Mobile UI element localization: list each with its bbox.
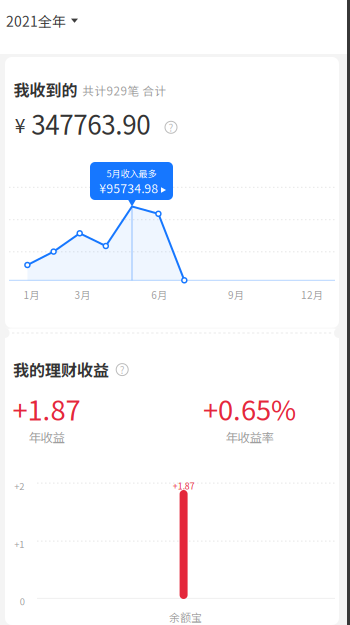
staticText: 0 [20,594,25,608]
staticText: 3月 [75,287,91,302]
staticText: ? [120,362,125,377]
staticText: 9月 [228,287,244,302]
staticText: 1月 [23,287,39,302]
staticText: 共计929笔 合计 [82,82,166,99]
staticText: +1 [14,537,24,551]
staticText: ? [168,120,173,135]
staticText: 6月 [151,287,167,302]
staticText: 我收到的 [13,78,77,101]
staticText: ¥95734.98 [99,179,158,197]
button[interactable]: More info [165,121,177,133]
staticText: ¥ [15,110,26,138]
staticText: 12月 [301,287,323,302]
staticText: +1.87 [173,479,195,492]
staticText: 我的理财收益 [13,358,109,381]
staticText: 年收益率 [226,428,274,446]
staticText: 余额宝 [169,609,202,625]
staticText: 2021全年 [6,10,66,31]
staticText: +0.65% [203,389,296,428]
staticText: +2 [14,479,24,493]
button[interactable]: More info [116,364,128,376]
button[interactable]: 2021全年 [0,5,84,37]
staticText: 347763.90 [31,104,150,142]
staticText: +1.87 [13,389,81,428]
staticText: 5月收入最多 [106,166,156,180]
staticText: 年收益 [29,428,65,446]
